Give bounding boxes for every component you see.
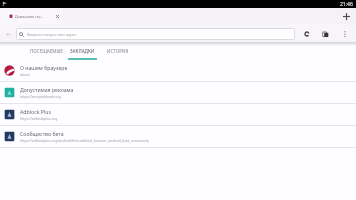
staticText: https://adblockplus.org xyxy=(20,116,58,121)
staticText: ЗАКЛАДКИ xyxy=(70,48,95,54)
button[interactable]: ИСТОРИЯ xyxy=(100,42,135,60)
staticText: О нашем браузере xyxy=(20,64,68,71)
staticText: Введите запрос или адрес xyxy=(27,32,77,37)
button[interactable] xyxy=(0,8,63,24)
staticText: Домашняя стр… xyxy=(15,14,44,19)
staticText: Допустимая реклама xyxy=(20,86,74,93)
button[interactable]: Adblock Plus xyxy=(0,104,356,126)
button[interactable]: Tabs xyxy=(316,26,335,42)
button[interactable]: Reload xyxy=(297,26,316,42)
staticText: 21:46 xyxy=(340,1,353,8)
button[interactable]: New tab xyxy=(339,9,353,23)
button[interactable]: ЗАКЛАДКИ xyxy=(64,42,100,60)
button[interactable]: Back xyxy=(0,26,16,42)
button[interactable]: Close tab xyxy=(52,11,62,21)
staticText: Сообщество бета xyxy=(20,130,64,137)
button[interactable]: ПОСЕЩАЕМЫЕ xyxy=(29,42,64,60)
button[interactable]: Допустимая реклама xyxy=(0,82,356,104)
staticText: Adblock Plus xyxy=(20,108,51,115)
staticText: ИСТОРИЯ xyxy=(107,48,129,54)
button[interactable]: Сообщество бета xyxy=(0,126,356,148)
staticText: https://acceptableads.org xyxy=(20,94,61,99)
button[interactable]: Введите запрос или адрес xyxy=(16,28,295,40)
staticText: ПОСЕЩАЕМЫЕ xyxy=(30,48,63,54)
button[interactable]: О нашем браузере xyxy=(0,60,356,82)
button[interactable]: More options xyxy=(335,26,354,42)
staticText: about: xyxy=(20,72,31,77)
staticText: https://adblockplus.org/android?link=adb… xyxy=(20,138,150,143)
